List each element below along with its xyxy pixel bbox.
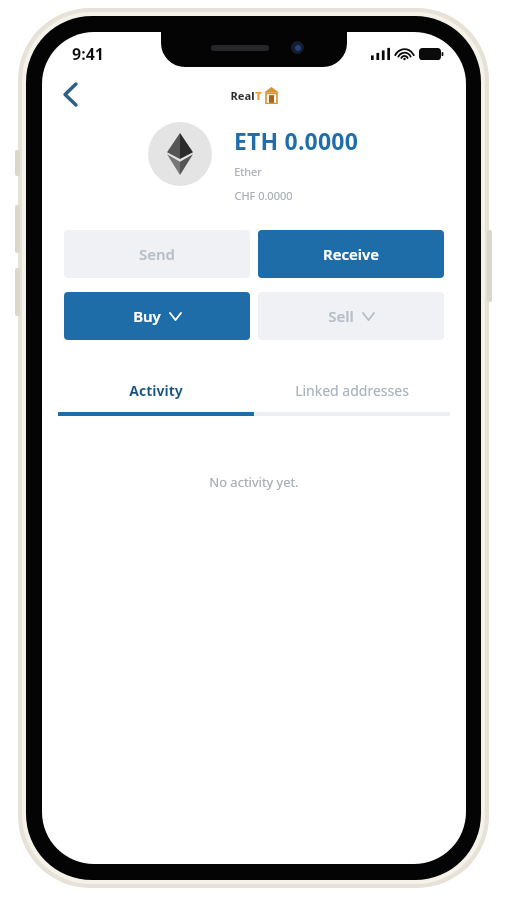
staticText: T: [255, 88, 262, 103]
button[interactable]: Back: [50, 74, 90, 114]
button[interactable]: Sell: [258, 292, 444, 340]
button[interactable]: Buy: [64, 292, 250, 340]
staticText: Real: [230, 88, 255, 103]
staticText: Sell: [328, 306, 354, 326]
button[interactable]: Send: [64, 230, 250, 278]
staticText: Activity: [129, 381, 183, 400]
staticText: ETH 0.0000: [234, 125, 358, 156]
staticText: CHF 0.0000: [234, 188, 293, 203]
staticText: Send: [139, 244, 175, 264]
staticText: Receive: [323, 244, 379, 264]
button[interactable]: Receive: [258, 230, 444, 278]
button[interactable]: Real: [230, 87, 279, 104]
button[interactable]: Linked addresses: [254, 373, 450, 407]
staticText: No activity yet.: [209, 473, 299, 491]
staticText: Ether: [234, 164, 262, 179]
staticText: 9:41: [72, 43, 104, 65]
button[interactable]: Activity: [58, 373, 254, 407]
staticText: Linked addresses: [295, 381, 409, 400]
staticText: Buy: [133, 306, 161, 326]
